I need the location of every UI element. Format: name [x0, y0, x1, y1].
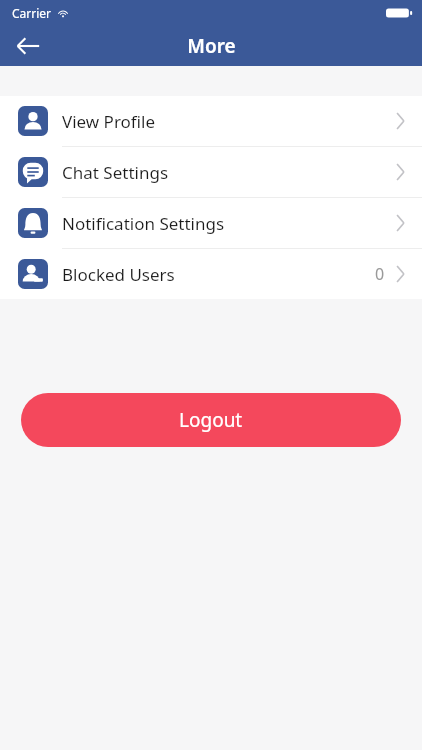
button[interactable]: View Profile [0, 96, 422, 147]
button[interactable]: Logout [21, 393, 401, 447]
button[interactable]: Back [8, 26, 48, 66]
button[interactable]: Blocked Users [0, 249, 422, 299]
staticText: Logout [179, 407, 243, 433]
button[interactable]: Chat Settings [0, 147, 422, 198]
staticText: View Profile [62, 110, 156, 133]
staticText: More [187, 33, 236, 59]
button[interactable]: Notification Settings [0, 198, 422, 249]
staticText: Carrier [12, 5, 52, 21]
staticText: 0 [375, 263, 385, 285]
staticText: Chat Settings [62, 161, 169, 184]
staticText: Blocked Users [62, 263, 175, 286]
staticText: Notification Settings [62, 212, 225, 235]
